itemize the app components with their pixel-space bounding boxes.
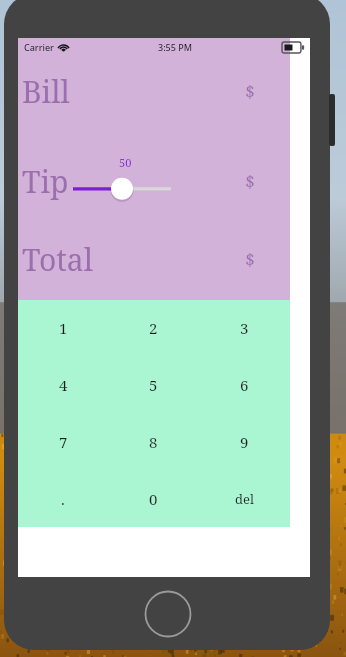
button[interactable]: . [18,470,108,527]
staticText: 50 [119,155,132,170]
staticText: Carrier [24,41,54,53]
staticText: 6 [240,375,249,395]
button[interactable]: 8 [108,413,199,470]
button[interactable]: 6 [199,356,290,413]
button[interactable]: 9 [199,413,290,470]
staticText: 8 [149,432,158,452]
staticText: 0 [149,489,158,509]
staticText: 1 [59,318,68,338]
button[interactable]: del [199,470,290,527]
staticText: del [235,490,254,508]
button[interactable]: Home [144,590,192,638]
staticText: 2 [149,318,158,338]
staticText: 4 [59,375,68,395]
staticText: $ [190,248,310,271]
staticText: $ [190,170,310,193]
staticText: 5 [149,375,158,395]
button[interactable]: 2 [108,300,199,356]
staticText: 3:55 PM [158,41,192,53]
button[interactable]: 1 [18,300,108,356]
button[interactable]: 7 [18,413,108,470]
staticText: Tip [22,161,69,202]
button[interactable]: 0 [108,470,199,527]
button[interactable]: 3 [199,300,290,356]
button[interactable]: Bill [18,60,310,122]
staticText: Bill [22,71,70,112]
staticText: . [61,489,65,509]
staticText: $ [190,80,310,103]
button[interactable]: 5 [108,356,199,413]
staticText: Total [22,239,93,280]
staticText: 7 [59,432,68,452]
button[interactable]: Tip percentage slider [73,153,171,209]
button[interactable]: Total [18,228,310,290]
staticText: 3 [240,318,249,338]
button[interactable]: 4 [18,356,108,413]
staticText: 9 [240,432,249,452]
